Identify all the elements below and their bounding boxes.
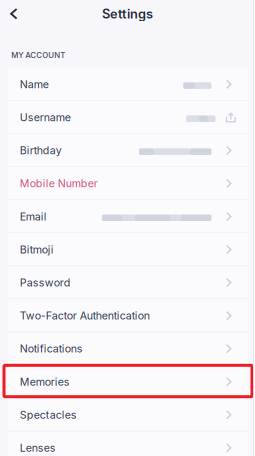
staticText: Lenses: [20, 441, 56, 454]
button[interactable]: Bitmoji: [8, 233, 248, 266]
staticText: Mobile Number: [20, 177, 98, 190]
staticText: MY ACCOUNT: [11, 50, 65, 60]
button[interactable]: Memories: [8, 365, 248, 398]
button[interactable]: Spectacles: [8, 398, 248, 431]
button[interactable]: Name: [8, 68, 248, 101]
button[interactable]: Two-Factor Authentication: [8, 299, 248, 332]
staticText: Memories: [20, 375, 70, 388]
staticText: Spectacles: [20, 408, 77, 421]
staticText: Bitmoji: [20, 243, 54, 256]
button[interactable]: Lenses: [8, 431, 248, 456]
button[interactable]: Notifications: [8, 332, 248, 365]
staticText: Email: [20, 210, 47, 223]
button[interactable]: Username: [8, 101, 248, 134]
button[interactable]: Password: [8, 266, 248, 299]
staticText: Birthday: [20, 144, 62, 157]
staticText: Two-Factor Authentication: [20, 309, 150, 322]
button[interactable]: Mobile Number: [8, 167, 248, 200]
button[interactable]: Email: [8, 200, 248, 233]
staticText: Password: [20, 276, 71, 289]
button[interactable]: Back: [0, 1, 27, 26]
staticText: Username: [20, 111, 71, 124]
button[interactable]: Birthday: [8, 134, 248, 167]
staticText: Notifications: [20, 342, 83, 355]
staticText: Name: [20, 78, 49, 91]
staticText: Settings: [102, 6, 153, 21]
